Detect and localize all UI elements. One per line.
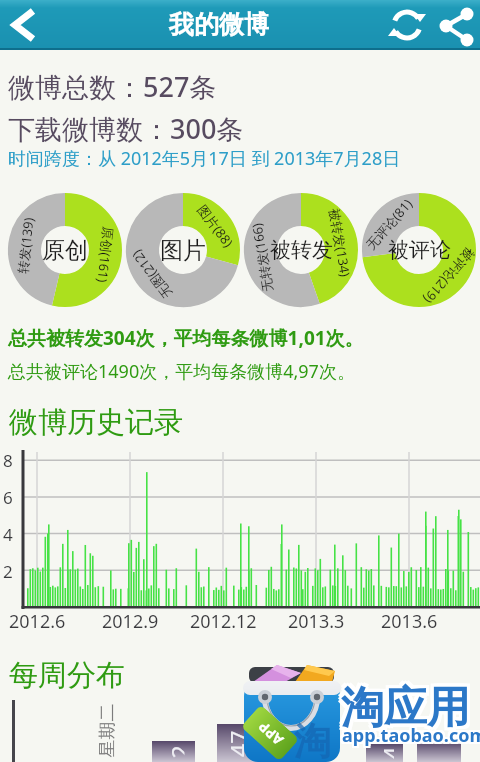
staticText: 无图(212) bbox=[127, 246, 176, 302]
staticText: app.taobao.com bbox=[342, 723, 480, 748]
button[interactable]: 淘 bbox=[243, 665, 343, 762]
staticText: app.taobao.com bbox=[344, 721, 480, 746]
staticText: 总共被转发304次，平均每条微博1,01次。 bbox=[8, 325, 364, 351]
staticText: 原创(161) bbox=[93, 226, 118, 284]
staticText: 2013.6 bbox=[381, 609, 438, 634]
staticText: 淘应用 bbox=[344, 678, 473, 732]
staticText: 8 bbox=[3, 449, 13, 472]
staticText: 淘应用 bbox=[341, 678, 470, 732]
button[interactable] bbox=[386, 2, 430, 48]
staticText: 2 bbox=[163, 744, 184, 758]
staticText: 我的微博 bbox=[169, 9, 269, 40]
staticText: 下载微博数：300条 bbox=[8, 110, 244, 147]
button[interactable]: 淘应用 bbox=[341, 681, 470, 735]
staticText: 6 bbox=[3, 486, 13, 509]
staticText: 淘应用 bbox=[338, 684, 467, 738]
staticText: 每周分布 bbox=[9, 657, 125, 694]
staticText: 2 bbox=[3, 560, 13, 583]
staticText: app.taobao.com bbox=[340, 725, 480, 750]
staticText: 微博总数：527条 bbox=[8, 68, 217, 105]
staticText: 微博历史记录 bbox=[9, 404, 183, 441]
staticText: 被转发(134) bbox=[325, 207, 355, 279]
button[interactable] bbox=[434, 2, 478, 48]
staticText: app.taobao.com bbox=[340, 721, 480, 746]
staticText: 图片(88) bbox=[193, 201, 237, 251]
staticText: 2012.6 bbox=[9, 609, 66, 634]
staticText: 被评论 bbox=[388, 237, 451, 263]
staticText: 淘应用 bbox=[341, 681, 470, 735]
staticText: 47 bbox=[223, 730, 254, 757]
staticText: 图片 bbox=[160, 236, 206, 265]
staticText: 淘应用 bbox=[338, 678, 467, 732]
staticText: 无转发(166) bbox=[247, 221, 277, 293]
button[interactable] bbox=[0, 0, 46, 50]
button[interactable]: app.taobao.com bbox=[342, 723, 480, 748]
staticText: 淘应用 bbox=[341, 684, 470, 738]
staticText: 无评论(81) bbox=[362, 195, 416, 253]
staticText: 淘应用 bbox=[338, 681, 467, 735]
staticText: 被转发 bbox=[270, 237, 333, 263]
staticText: app.taobao.com bbox=[342, 725, 480, 750]
staticText: 转发(139) bbox=[13, 216, 38, 274]
staticText: app.taobao.com bbox=[344, 723, 480, 748]
staticText: 淘 bbox=[294, 718, 331, 762]
staticText: APP bbox=[254, 717, 287, 750]
staticText: 淘应用 bbox=[344, 681, 473, 735]
staticText: 淘应用 bbox=[344, 684, 473, 738]
staticText: 星期二 bbox=[95, 703, 118, 757]
staticText: 4 bbox=[376, 746, 394, 760]
staticText: 原创 bbox=[42, 236, 88, 265]
staticText: 2012.12 bbox=[190, 609, 257, 634]
staticText: 2013.3 bbox=[288, 609, 345, 634]
staticText: app.taobao.com bbox=[340, 723, 480, 748]
staticText: app.taobao.com bbox=[342, 721, 480, 746]
staticText: 2012.9 bbox=[102, 609, 159, 634]
staticText: 总共被评论1490次，平均每条微博4,97次。 bbox=[8, 359, 355, 384]
staticText: 时间跨度：从 2012年5月17日 到 2013年7月28日 bbox=[8, 146, 401, 171]
staticText: 被评论(219) bbox=[419, 244, 479, 308]
staticText: 4 bbox=[3, 523, 13, 546]
staticText: app.taobao.com bbox=[344, 725, 480, 750]
